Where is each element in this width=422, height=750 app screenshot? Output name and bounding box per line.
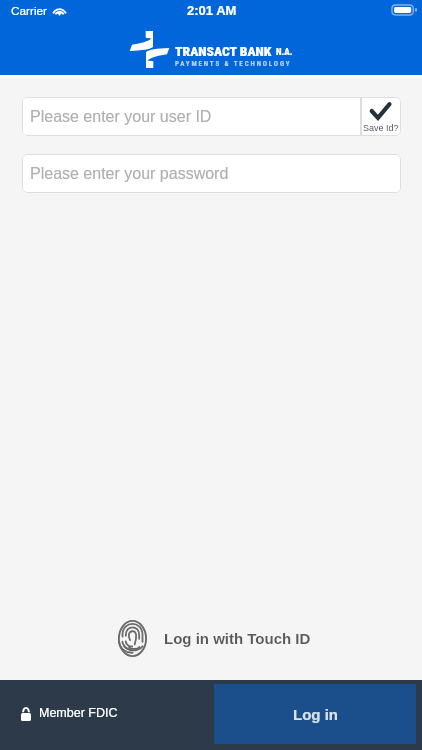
staticText: Log in with Touch ID	[164, 630, 311, 647]
staticText: 2:01 AM	[187, 3, 237, 18]
staticText: Please enter your user ID	[30, 108, 212, 126]
button[interactable]: Please enter your password	[22, 154, 401, 193]
button[interactable]: Save Id	[361, 97, 401, 136]
button[interactable]: Log in with Touch ID	[118, 620, 315, 657]
staticText: Please enter your password	[30, 165, 229, 183]
button[interactable]: Please enter your user ID	[22, 97, 361, 136]
staticText: N.A.	[276, 47, 293, 58]
staticText: Carrier	[11, 4, 48, 17]
button[interactable]: Log in	[214, 684, 416, 744]
staticText: PAYMENTS & TECHNOLOGY	[175, 60, 292, 68]
staticText: Member FDIC	[39, 706, 118, 720]
staticText: Log in	[293, 706, 338, 723]
staticText: TRANSACT BANK	[175, 43, 272, 59]
staticText: Save Id?	[363, 123, 399, 133]
